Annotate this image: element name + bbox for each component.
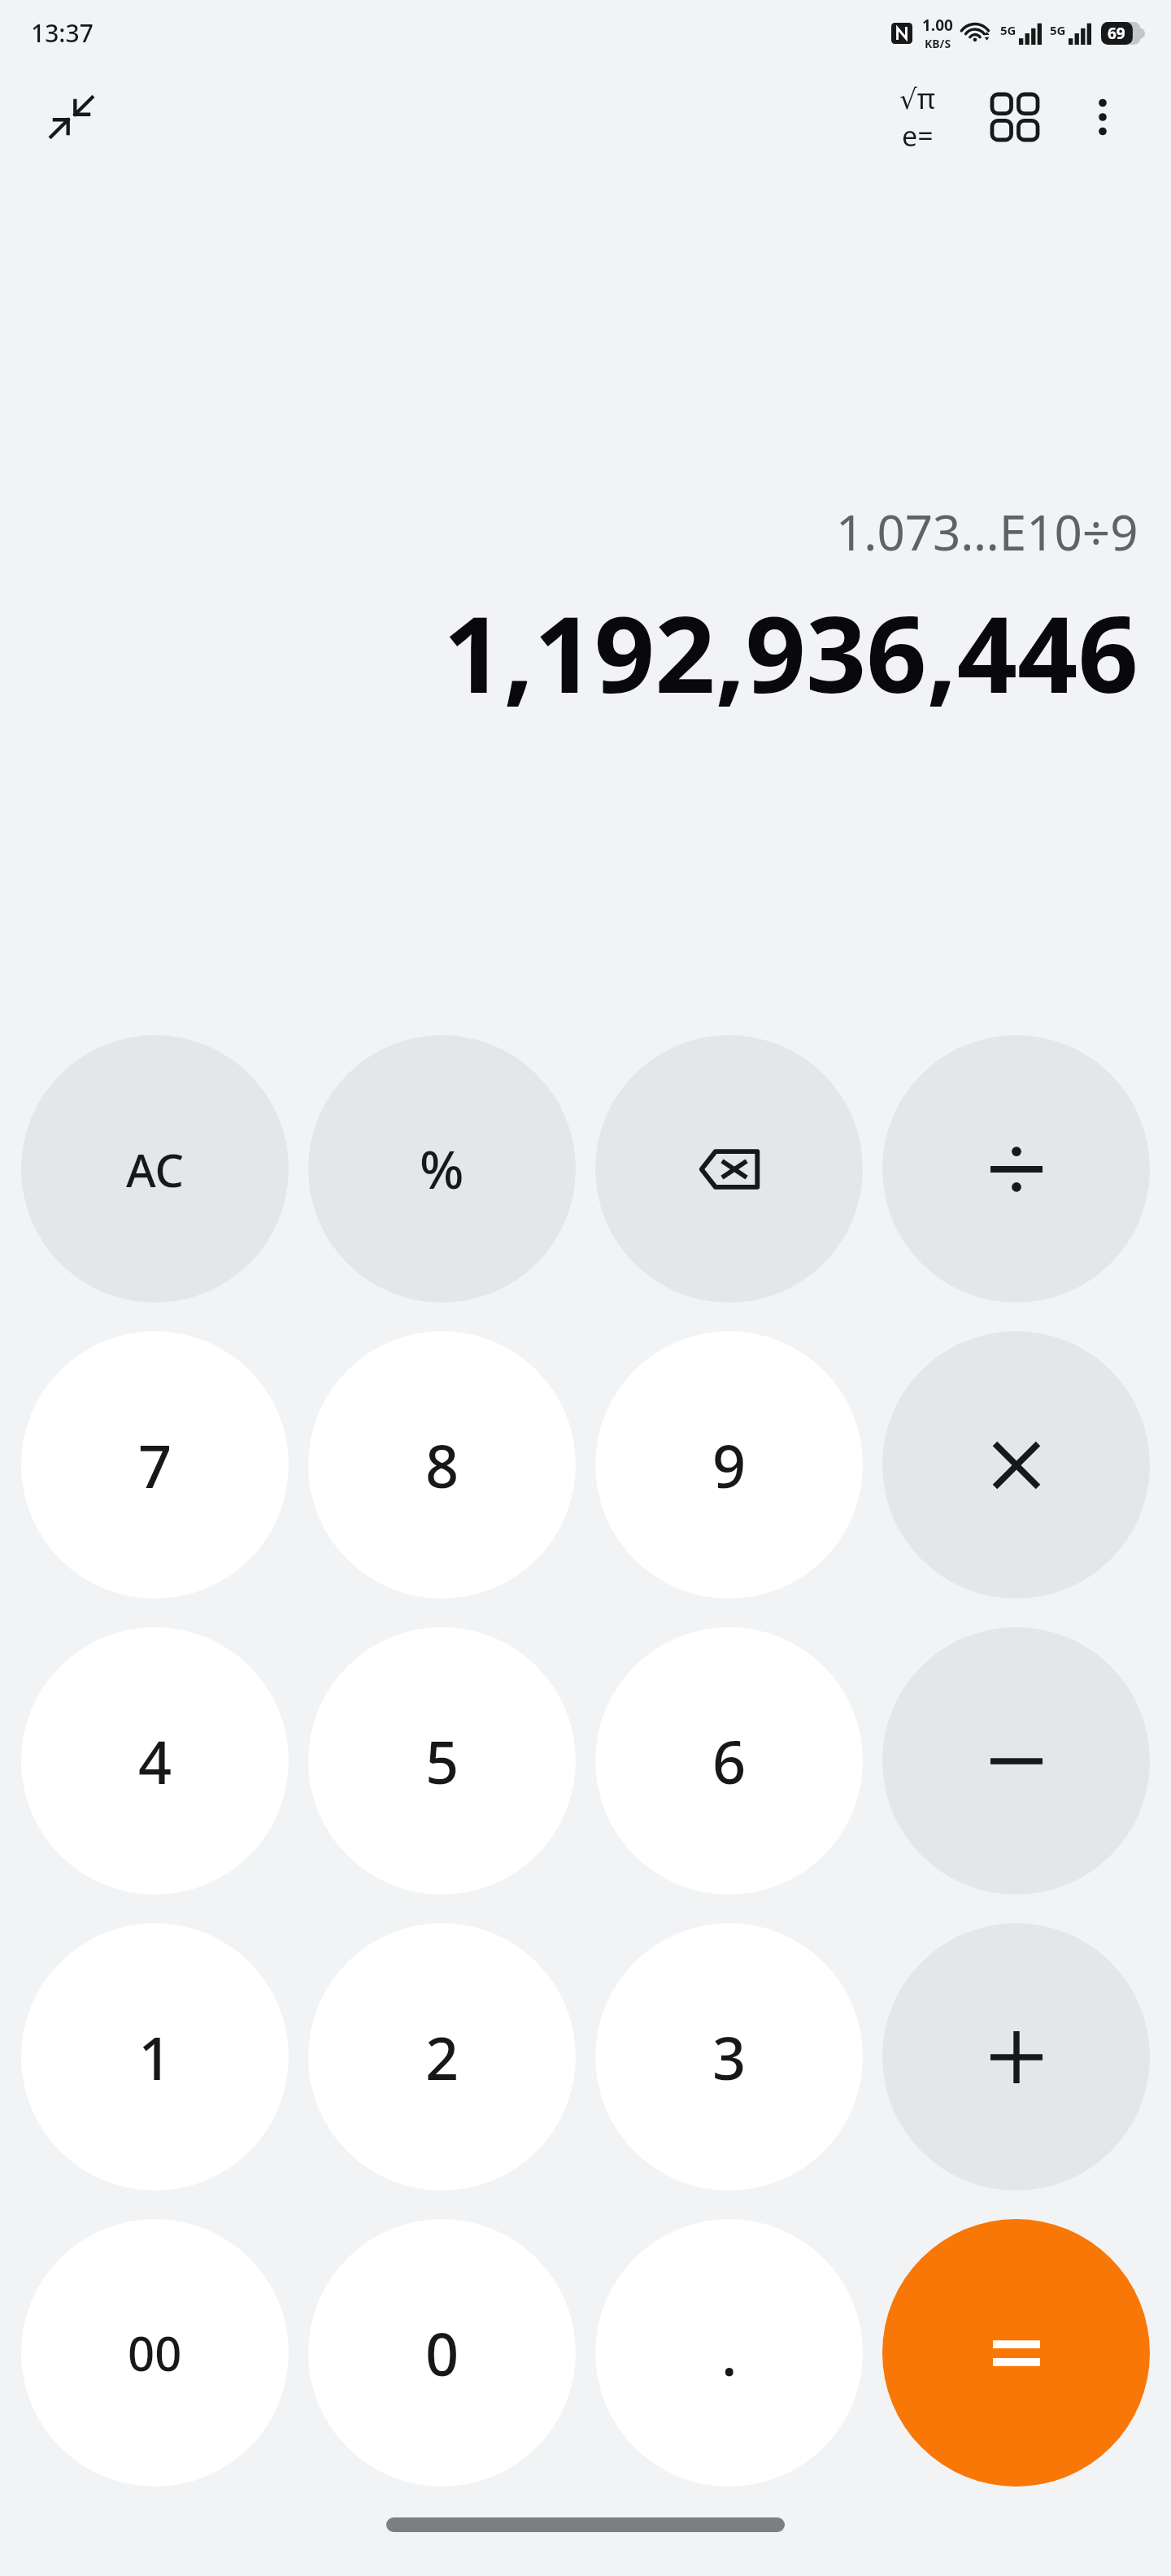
staticText: 2 xyxy=(425,2017,459,2097)
staticText: 1 xyxy=(138,2017,172,2097)
staticText: √π xyxy=(899,80,935,117)
staticText: 7 xyxy=(138,1425,172,1505)
staticText: 1.00 xyxy=(922,15,953,36)
button[interactable]: Backspace xyxy=(595,1035,863,1303)
button[interactable]: Divide xyxy=(882,1035,1150,1303)
staticText: 0 xyxy=(425,2313,459,2393)
button[interactable]: 5 xyxy=(308,1627,576,1895)
staticText: . xyxy=(721,2313,738,2393)
staticText: 4 xyxy=(138,1721,172,1801)
button[interactable]: % xyxy=(308,1035,576,1303)
button[interactable]: 7 xyxy=(21,1331,289,1599)
staticText: 3 xyxy=(712,2017,747,2097)
staticText: 5G xyxy=(1000,22,1016,38)
staticText: 8 xyxy=(425,1425,459,1505)
staticText: 00 xyxy=(128,2321,182,2385)
button[interactable]: Multiply xyxy=(882,1331,1150,1599)
staticText: 1.073…E10÷9 xyxy=(836,498,1138,565)
button[interactable]: Scientific xyxy=(880,80,955,154)
staticText: AC xyxy=(126,1138,185,1200)
staticText: 6 xyxy=(712,1721,747,1801)
staticText: KB/S xyxy=(925,36,951,51)
staticText: 5G xyxy=(1050,22,1066,38)
button[interactable]: Minus xyxy=(882,1627,1150,1895)
button[interactable]: 00 xyxy=(21,2219,289,2487)
button[interactable]: 3 xyxy=(595,1923,863,2191)
staticText: e= xyxy=(902,117,934,154)
staticText: 5 xyxy=(425,1721,459,1801)
staticText: 9 xyxy=(712,1425,747,1505)
button[interactable]: AC xyxy=(21,1035,289,1303)
staticText: % xyxy=(420,1134,464,1204)
staticText: 69 xyxy=(1108,23,1125,44)
button[interactable]: 1 xyxy=(21,1923,289,2191)
button[interactable]: 2 xyxy=(308,1923,576,2191)
button[interactable]: Plus xyxy=(882,1923,1150,2191)
button[interactable]: 9 xyxy=(595,1331,863,1599)
button[interactable]: 6 xyxy=(595,1627,863,1895)
button[interactable]: Converters xyxy=(977,80,1052,154)
button[interactable]: Equals xyxy=(882,2219,1150,2487)
button[interactable]: More options xyxy=(1070,85,1135,150)
staticText: 13:37 xyxy=(31,16,94,50)
staticText: 1,192,936,446 xyxy=(443,580,1138,724)
button[interactable]: . xyxy=(595,2219,863,2487)
button[interactable]: 4 xyxy=(21,1627,289,1895)
button[interactable]: 0 xyxy=(308,2219,576,2487)
button[interactable]: Collapse xyxy=(41,86,102,148)
button[interactable]: 8 xyxy=(308,1331,576,1599)
